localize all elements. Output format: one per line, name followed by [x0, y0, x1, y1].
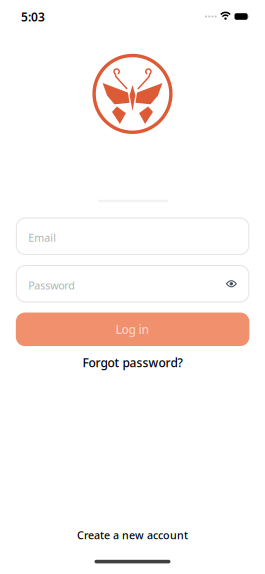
button[interactable]: Log in: [16, 313, 249, 346]
staticText: Create a new account: [77, 528, 188, 542]
staticText: Email: [28, 231, 56, 245]
button[interactable]: Password: [16, 265, 249, 302]
button[interactable]: Show password: [226, 279, 237, 288]
button[interactable]: Email: [16, 217, 249, 255]
staticText: Log in: [116, 321, 150, 337]
staticText: 5:03: [21, 9, 45, 25]
staticText: Password: [28, 278, 75, 292]
staticText: Forgot password?: [82, 354, 182, 370]
button[interactable]: Forgot password?: [82, 354, 182, 370]
button[interactable]: Create a new account: [77, 528, 188, 542]
